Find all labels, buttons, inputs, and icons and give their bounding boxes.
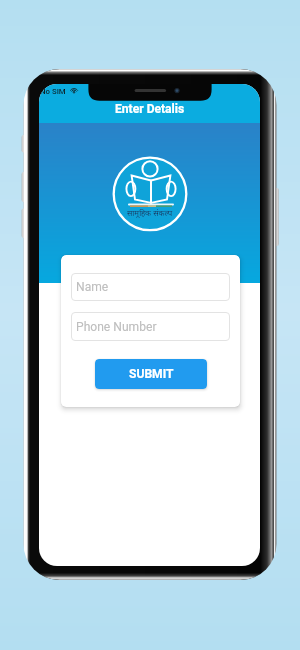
button[interactable]: SUBMIT bbox=[95, 359, 207, 389]
staticText: सामूहिक संकल्प bbox=[127, 209, 173, 218]
staticText: Enter Detalis bbox=[115, 102, 185, 116]
button[interactable]: Phone Number bbox=[71, 312, 230, 341]
staticText: SUBMIT bbox=[129, 367, 174, 381]
staticText: Phone Number bbox=[76, 320, 157, 334]
button[interactable]: Name bbox=[71, 273, 230, 301]
staticText: No SIM bbox=[40, 87, 66, 96]
staticText: Name bbox=[76, 280, 109, 294]
